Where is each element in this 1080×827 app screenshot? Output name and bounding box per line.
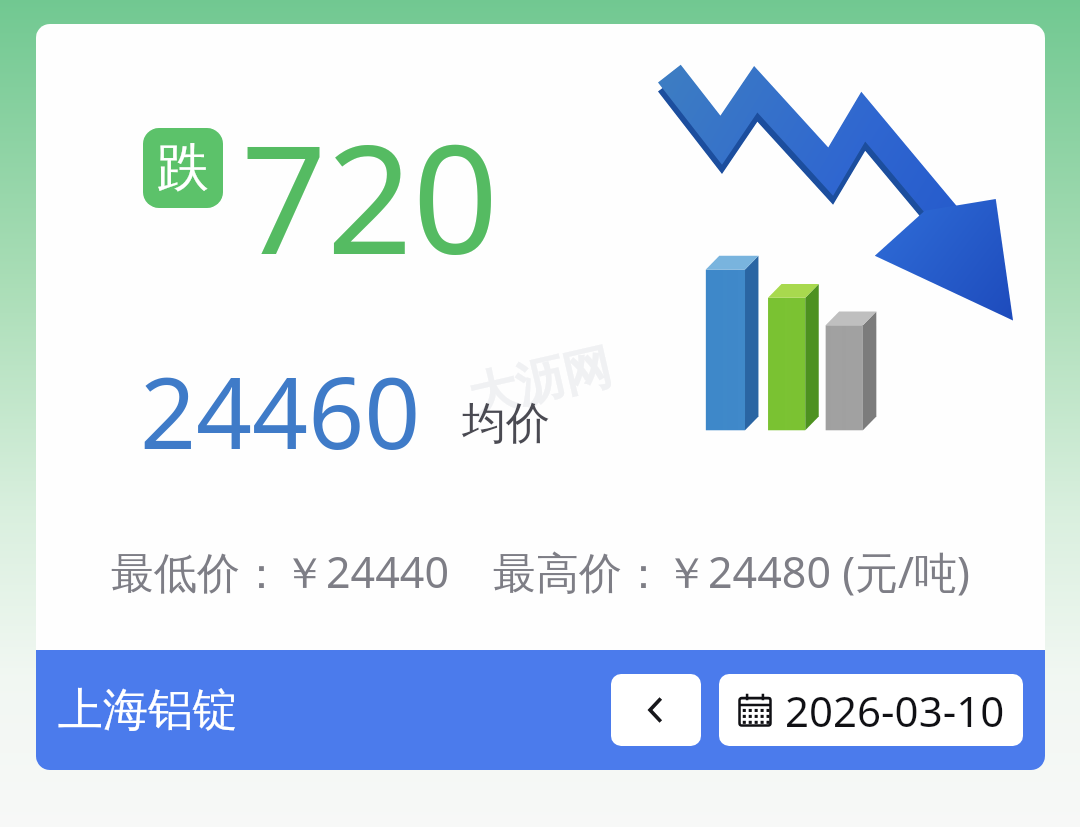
button[interactable]: Previous day [611, 674, 701, 746]
staticText: 上海铝锭 [58, 682, 238, 739]
button[interactable]: 2026-03-10 [719, 674, 1023, 746]
staticText: 720 [241, 94, 499, 298]
staticText: 大沥网 [463, 337, 617, 427]
staticText: 最低价：￥24440 [111, 542, 449, 601]
staticText: 24460 [140, 344, 421, 477]
staticText: 最高价：￥24480 (元/吨) [493, 542, 970, 601]
staticText: 跌 [157, 135, 209, 201]
button[interactable]: 跌 [143, 128, 223, 208]
staticText: 2026-03-10 [785, 682, 1005, 739]
staticText: 均价 [462, 396, 550, 451]
